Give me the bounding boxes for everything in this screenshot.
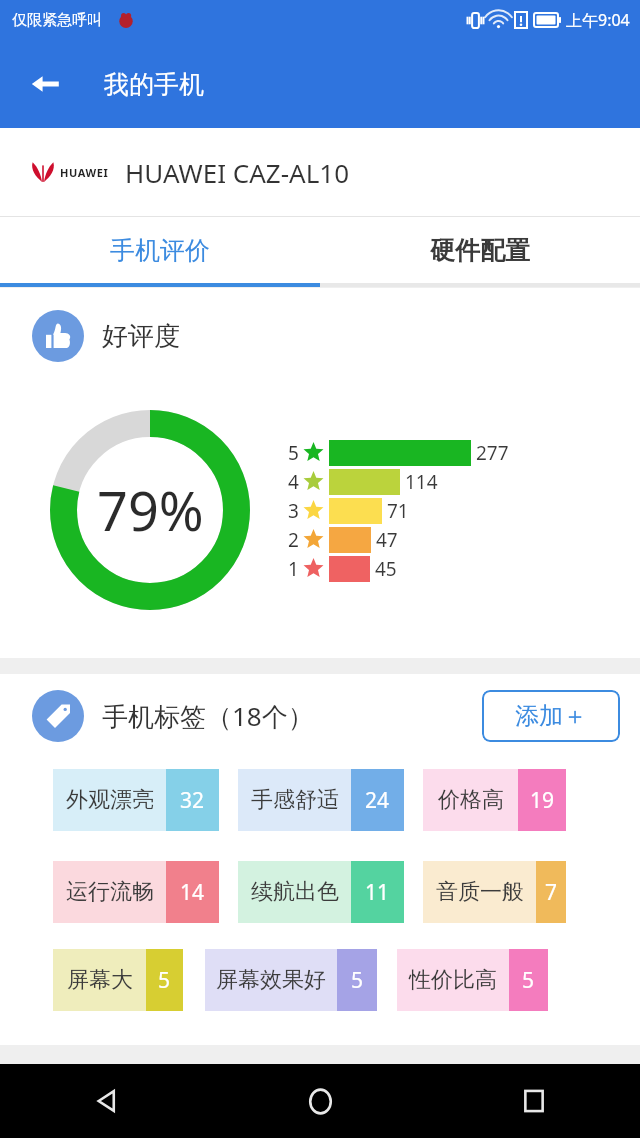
staticText: 277 [476, 440, 509, 466]
staticText: 32 [180, 786, 205, 815]
staticText: 续航出色 [251, 878, 339, 906]
button[interactable]: 手机评价 [0, 217, 320, 283]
staticText: 性价比高 [409, 966, 497, 994]
staticText: 上午9:04 [566, 9, 630, 31]
staticText: 手机标签（18个） [102, 698, 314, 734]
staticText: 价格高 [438, 786, 504, 814]
button[interactable]: Recent apps [427, 1064, 640, 1138]
button[interactable]: Back [0, 1064, 214, 1138]
button[interactable]: 添加＋ [482, 690, 620, 742]
staticText: 屏幕大 [67, 966, 133, 994]
staticText: 114 [405, 469, 438, 495]
staticText: HUAWEI [60, 165, 109, 180]
button[interactable]: 价格高 [423, 769, 566, 831]
staticText: 运行流畅 [66, 878, 154, 906]
button[interactable]: Home [214, 1064, 427, 1138]
staticText: 5 [522, 966, 535, 995]
button[interactable]: 手感舒适 [238, 769, 404, 831]
staticText: 5 [158, 966, 171, 995]
button[interactable]: 硬件配置 [320, 217, 640, 283]
staticText: 手感舒适 [251, 786, 339, 814]
button[interactable]: 屏幕效果好 [205, 949, 377, 1011]
staticText: 好评度 [102, 320, 180, 353]
button[interactable]: 音质一般 [423, 861, 566, 923]
staticText: 外观漂亮 [66, 786, 154, 814]
staticText: 5 [351, 966, 364, 995]
button[interactable]: 性价比高 [397, 949, 548, 1011]
button[interactable]: 外观漂亮 [53, 769, 219, 831]
staticText: 我的手机 [104, 69, 204, 100]
staticText: 47 [376, 527, 398, 553]
button[interactable]: HUAWEI [0, 128, 640, 216]
staticText: 24 [365, 786, 390, 815]
staticText: 硬件配置 [430, 235, 530, 266]
button[interactable]: 运行流畅 [53, 861, 219, 923]
staticText: 仅限紧急呼叫 [12, 11, 102, 30]
staticText: 71 [387, 498, 409, 524]
staticText: 45 [375, 556, 397, 582]
staticText: 添加＋ [515, 701, 587, 731]
staticText: 手机评价 [110, 235, 210, 266]
staticText: 屏幕效果好 [216, 966, 326, 994]
staticText: HUAWEI CAZ-AL10 [125, 155, 350, 190]
staticText: 音质一般 [436, 878, 524, 906]
button[interactable]: 屏幕大 [53, 949, 183, 1011]
staticText: 2 [288, 527, 299, 553]
staticText: 4 [288, 469, 299, 495]
button[interactable]: 续航出色 [238, 861, 404, 923]
staticText: 11 [365, 878, 390, 907]
staticText: 79% [97, 473, 204, 547]
staticText: 14 [180, 878, 205, 907]
staticText: 5 [288, 440, 299, 466]
staticText: 1 [288, 556, 299, 582]
staticText: 3 [288, 498, 299, 524]
button[interactable]: Back [22, 61, 68, 107]
staticText: 7 [545, 878, 558, 907]
staticText: 19 [530, 786, 555, 815]
